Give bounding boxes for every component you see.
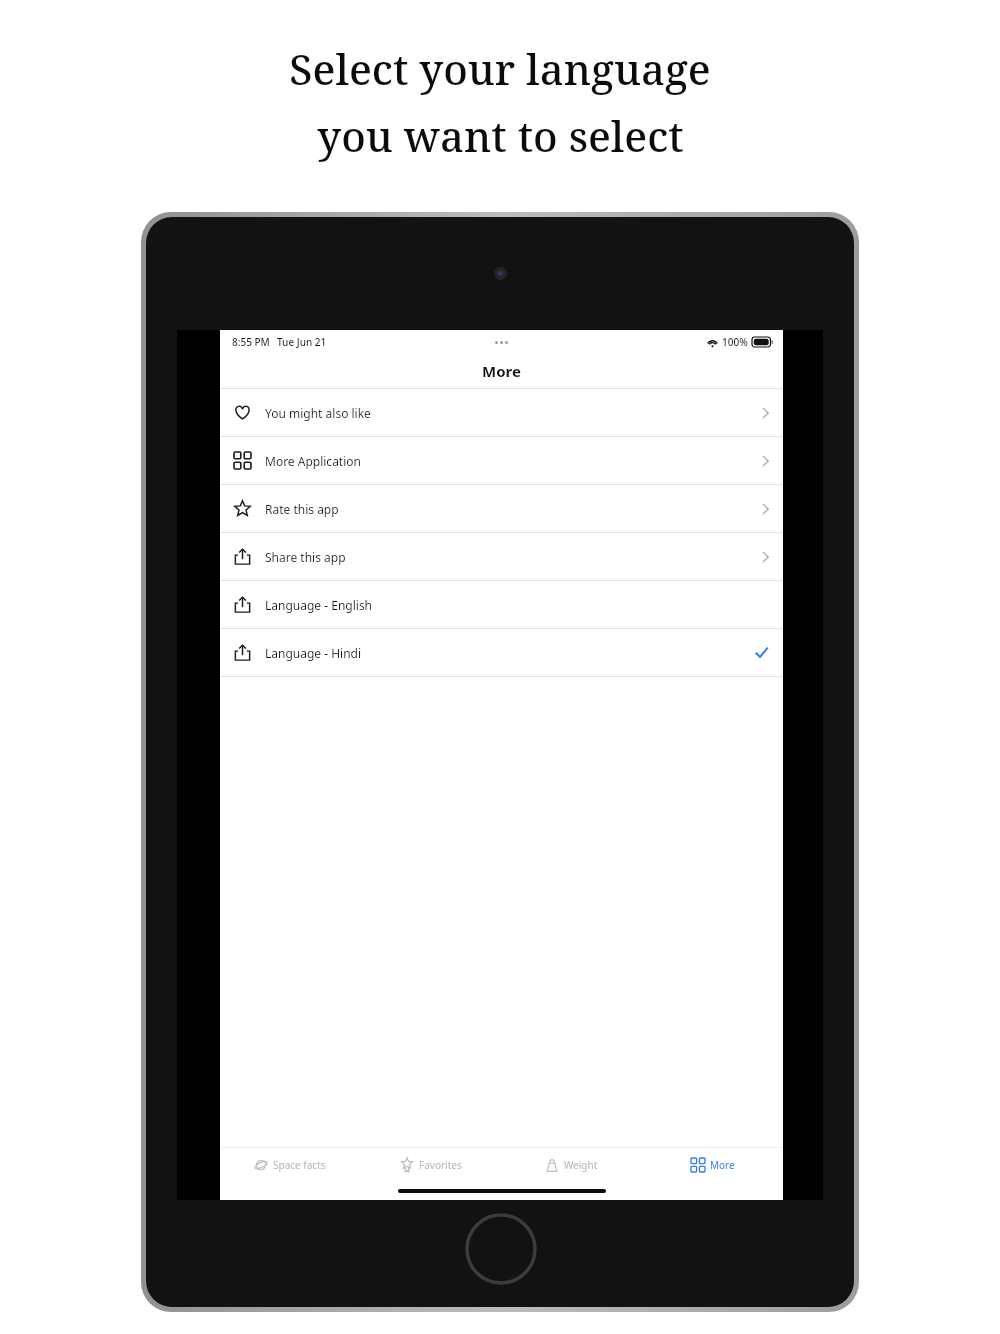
staticText: Language - Hindi <box>265 645 362 661</box>
button[interactable]: You might also like <box>220 389 783 436</box>
staticText: Tue Jun 21 <box>277 335 327 349</box>
staticText: Favorites <box>419 1158 462 1172</box>
button[interactable]: More Application <box>220 437 783 484</box>
staticText: More Application <box>265 453 361 469</box>
staticText: Select your language <box>289 40 711 97</box>
button[interactable]: Favorites <box>360 1148 501 1182</box>
staticText: You might also like <box>265 405 371 421</box>
staticText: Rate this app <box>265 501 339 517</box>
staticText: 8:55 PM <box>232 335 270 349</box>
staticText: More <box>710 1158 735 1172</box>
staticText: Share this app <box>265 549 346 565</box>
button[interactable]: Rate this app <box>220 485 783 532</box>
button[interactable]: More <box>642 1148 783 1182</box>
staticText: 100% <box>722 335 748 349</box>
button[interactable]: Space facts <box>220 1148 360 1182</box>
button[interactable]: Language - Hindi <box>220 629 783 676</box>
staticText: Language - English <box>265 597 373 613</box>
button[interactable]: Share this app <box>220 533 783 580</box>
staticText: More <box>482 361 521 381</box>
staticText: Weight <box>564 1158 598 1172</box>
button[interactable]: Language - English <box>220 581 783 628</box>
button[interactable]: Weight <box>501 1148 642 1182</box>
staticText: you want to select <box>317 107 684 164</box>
staticText: Space facts <box>273 1158 326 1172</box>
